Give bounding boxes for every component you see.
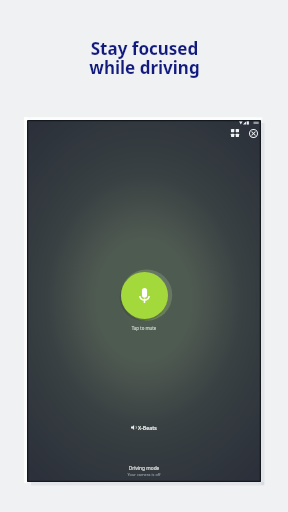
button[interactable]: Close (245, 125, 261, 141)
button[interactable]: X-Beats (128, 423, 160, 432)
staticText: X-Beats (138, 424, 157, 431)
staticText: Tap to mute (27, 325, 261, 331)
staticText: Driving mode (27, 465, 261, 472)
staticText: Stay focused while driving (89, 37, 200, 79)
staticText: Your camera is off (27, 472, 261, 477)
button[interactable]: Apps (227, 125, 243, 141)
button[interactable]: Tap to mute (121, 272, 168, 319)
